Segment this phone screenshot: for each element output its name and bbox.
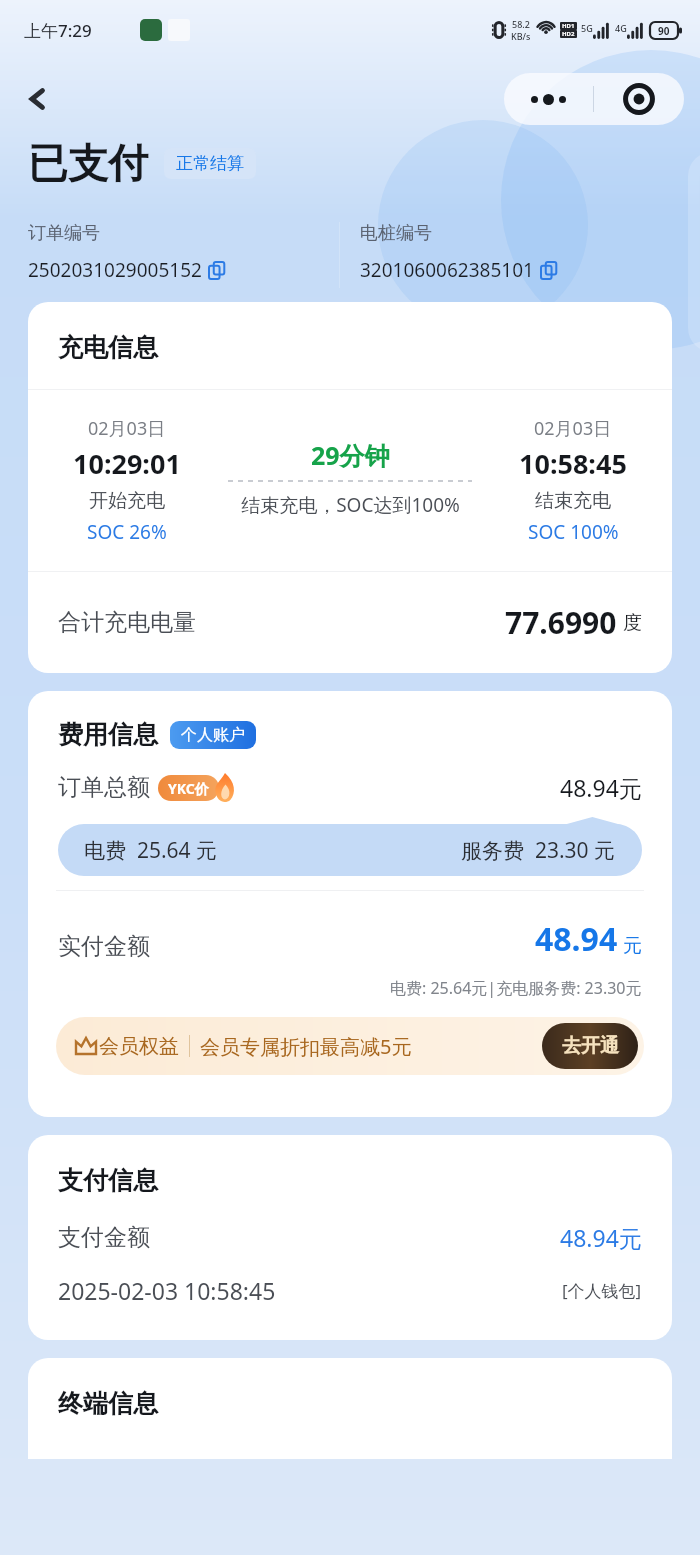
staticText: 3201060062385101: [360, 257, 534, 283]
staticText: 58.2: [512, 18, 530, 30]
button[interactable]: 会员权益: [56, 1017, 644, 1075]
staticText: YKC价: [168, 779, 209, 798]
staticText: 90: [658, 24, 670, 38]
staticText: 4G: [615, 22, 627, 34]
staticText: [个人钱包]: [562, 1279, 642, 1302]
staticText: 服务费 23.30 元: [461, 836, 616, 865]
staticText: 电费 25.64 元: [84, 836, 218, 865]
button[interactable]: Back: [14, 75, 62, 123]
staticText: 77.6990: [505, 602, 617, 643]
button[interactable]: 3201060062385101: [360, 257, 558, 283]
staticText: 电桩编号: [360, 222, 432, 245]
staticText: 29分钟: [311, 438, 390, 472]
staticText: 度: [623, 611, 642, 635]
staticText: 会员专属折扣最高减5元: [200, 1033, 412, 1060]
staticText: 费用信息: [58, 719, 158, 750]
button[interactable]: Close: [594, 73, 684, 125]
staticText: 48.94元: [560, 772, 642, 803]
staticText: 02月03日: [534, 416, 612, 441]
staticText: 2502031029005152: [28, 257, 202, 283]
staticText: 订单编号: [28, 222, 100, 245]
button[interactable]: 2502031029005152: [28, 257, 226, 283]
staticText: 48.94: [535, 917, 618, 961]
other: Copy: [541, 262, 558, 279]
staticText: 电费: 25.64元|充电服务费: 23.30元: [390, 977, 642, 999]
staticText: 已支付: [28, 138, 148, 188]
staticText: 5G: [581, 22, 593, 34]
other: Copy: [209, 262, 226, 279]
staticText: 02月03日: [88, 416, 166, 441]
staticText: 上午7:29: [24, 19, 92, 42]
button[interactable]: 个人账户: [181, 725, 245, 745]
staticText: 合计充电电量: [58, 608, 196, 637]
button[interactable]: 电费 25.64 元: [84, 824, 616, 876]
staticText: 2025-02-03 10:58:45: [58, 1275, 276, 1306]
staticText: 实付金额: [58, 932, 150, 961]
staticText: 结束充电: [535, 489, 611, 513]
staticText: 10:29:01: [73, 445, 181, 482]
staticText: 订单总额: [58, 773, 150, 802]
button[interactable]: 去开通: [542, 1023, 638, 1069]
staticText: SOC 100%: [528, 519, 619, 545]
staticText: 正常结算: [176, 153, 244, 174]
staticText: HD1: [562, 22, 575, 30]
staticText: 终端信息: [58, 1388, 158, 1419]
staticText: 元: [623, 934, 642, 958]
staticText: 48.94元: [560, 1222, 642, 1253]
staticText: HD2: [562, 30, 575, 38]
button[interactable]: 正常结算: [176, 153, 244, 174]
staticText: 结束充电，SOC达到100%: [241, 492, 460, 518]
staticText: 会员权益: [99, 1034, 179, 1059]
staticText: 10:58:45: [519, 445, 627, 482]
staticText: 支付金额: [58, 1223, 150, 1252]
staticText: 支付信息: [58, 1165, 158, 1196]
button[interactable]: More: [504, 73, 593, 125]
staticText: 去开通: [562, 1034, 619, 1058]
staticText: 开始充电: [89, 489, 165, 513]
staticText: SOC 26%: [87, 519, 167, 545]
staticText: KB/s: [511, 30, 531, 42]
staticText: 充电信息: [58, 332, 158, 363]
staticText: 个人账户: [181, 725, 245, 745]
